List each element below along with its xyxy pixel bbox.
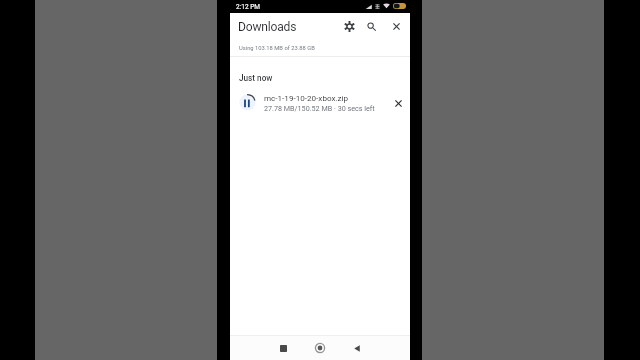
staticText: Just now [239,73,273,83]
button[interactable]: Home [310,338,330,358]
staticText: 2:12 PM [236,3,260,11]
button[interactable]: Back [347,338,367,358]
staticText: Downloads [238,20,297,34]
staticText: Using 103.18 MB of 23.88 GB [239,45,315,52]
button[interactable]: Cancel download [387,92,409,114]
staticText: mc-1-19-10-20-xbox.zip [264,93,349,102]
button[interactable]: Close [385,15,407,37]
staticText: 27.78 MB/150.52 MB · 30 secs left [264,104,375,112]
button[interactable]: Settings [338,15,360,37]
button[interactable]: mc-1-19-10-20-xbox.zip [230,86,410,112]
button[interactable]: Search [360,15,382,37]
button[interactable]: Recents [273,338,293,358]
